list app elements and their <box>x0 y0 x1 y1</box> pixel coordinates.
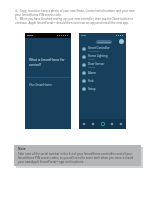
staticText: Take note of the serial number in the li… <box>18 152 134 164</box>
staticText: 4. Copy, record or keep a photo of your … <box>15 9 135 17</box>
staticText: Closed <box>88 66 96 69</box>
button[interactable]: Automations <box>108 120 116 128</box>
button[interactable]: Smart Controller <box>82 45 126 53</box>
staticText: Active <box>88 58 95 61</box>
staticText: Alarm <box>88 71 96 75</box>
staticText: Hub <box>88 79 94 83</box>
button[interactable]: Hub <box>82 77 126 85</box>
button[interactable]: Search <box>96 40 112 44</box>
button[interactable]: Setup <box>82 85 126 93</box>
staticText: What is SmartHome for control? <box>29 58 65 67</box>
staticText: Connected <box>88 50 100 53</box>
staticText: 5. When you have finished setting up you… <box>15 17 134 25</box>
button[interactable]: Home <box>80 120 88 128</box>
staticText: Smart Controller <box>88 46 110 50</box>
button[interactable]: Devices <box>89 120 97 128</box>
button[interactable]: Account <box>117 120 125 128</box>
staticText: Door Sensor <box>88 62 105 66</box>
staticText: Plus SmartHome <box>29 83 52 87</box>
button[interactable]: Dashboard <box>99 120 107 128</box>
staticText: Home Lighting <box>88 54 108 58</box>
button[interactable]: Door Sensor <box>82 61 126 69</box>
button[interactable]: Alarm <box>82 69 126 77</box>
staticText: Note <box>18 147 26 151</box>
staticText: SmartHome <box>98 41 111 44</box>
button[interactable]: Account <box>119 39 124 44</box>
staticText: Setup <box>88 87 96 91</box>
button[interactable]: Home Lighting <box>82 53 126 61</box>
